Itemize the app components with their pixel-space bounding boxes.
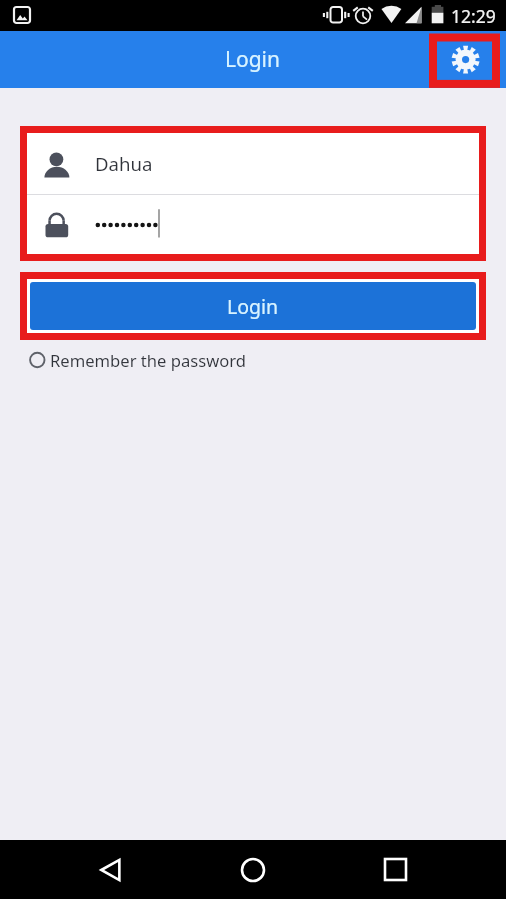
- button[interactable]: User name: [27, 133, 479, 194]
- button[interactable]: Login: [30, 282, 476, 330]
- staticText: 12:29: [451, 4, 496, 28]
- staticText: Remember the password: [50, 349, 246, 372]
- button[interactable]: Remember the password: [21, 347, 246, 373]
- staticText: Dahua: [95, 151, 153, 176]
- button[interactable]: Back: [76, 840, 146, 899]
- staticText: Login: [227, 293, 279, 320]
- button[interactable]: Settings: [429, 32, 500, 87]
- button[interactable]: Password: [27, 195, 479, 252]
- button[interactable]: Recents: [360, 840, 430, 899]
- staticText: Login: [225, 45, 281, 74]
- button[interactable]: Home: [218, 840, 288, 899]
